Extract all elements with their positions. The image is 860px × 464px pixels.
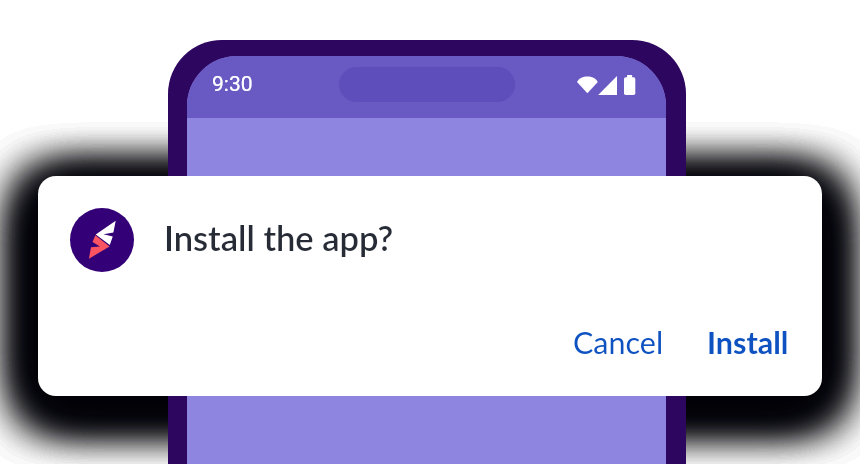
staticText: Cancel [573, 324, 664, 361]
other: Wi-Fi, signal and battery status [577, 75, 638, 96]
other: App icon [70, 208, 134, 272]
staticText: Install [707, 324, 789, 361]
button[interactable]: Install [691, 312, 805, 373]
staticText: Install the app? [164, 217, 394, 258]
button[interactable]: Cancel [557, 312, 680, 373]
staticText: 9:30 [212, 72, 253, 97]
